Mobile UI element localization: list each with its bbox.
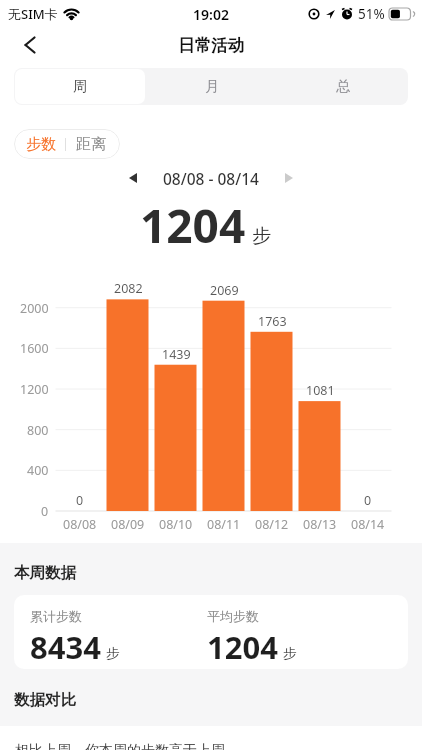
staticText: 本周数据 [14, 563, 76, 583]
staticText: 步 [283, 645, 297, 662]
staticText: 08/11 [207, 516, 241, 533]
staticText: 08/13 [303, 516, 337, 533]
staticText: 0 [364, 492, 372, 509]
button[interactable] [14, 29, 46, 61]
staticText: 08/09 [111, 516, 145, 533]
button[interactable]: 总 [277, 68, 408, 105]
staticText: 19:02 [193, 5, 229, 24]
button[interactable]: 月 [146, 68, 277, 105]
staticText: 0 [76, 492, 84, 509]
button[interactable]: 累计步数 [14, 595, 408, 669]
staticText: 步 [252, 224, 271, 248]
staticText: 08/08 [63, 516, 97, 533]
staticText: 08/10 [159, 516, 193, 533]
staticText: 距离 [76, 135, 106, 154]
staticText: 400 [27, 462, 49, 479]
staticText: 数据对比 [14, 690, 76, 710]
staticText: 2082 [114, 280, 143, 297]
staticText: 平均步数 [207, 608, 259, 624]
staticText: 步 [106, 645, 120, 662]
button[interactable]: 步数 [14, 129, 120, 159]
staticText: 1763 [258, 313, 287, 330]
staticText: 1204 [207, 626, 278, 668]
staticText: 1439 [162, 346, 191, 363]
staticText: 1204 [140, 194, 246, 257]
staticText: 08/08 - 08/14 [163, 168, 259, 189]
staticText: 累计步数 [30, 608, 82, 624]
staticText: 相比上周，你本周的步数高于上周 [15, 742, 225, 750]
staticText: 800 [27, 422, 49, 439]
staticText: 2069 [210, 282, 239, 299]
staticText: 1600 [20, 340, 49, 357]
staticText: 0 [41, 503, 49, 520]
button[interactable] [277, 166, 301, 190]
staticText: 日常活动 [178, 35, 244, 56]
staticText: 总 [336, 78, 350, 96]
staticText: 无SIM卡 [8, 5, 58, 23]
staticText: 1081 [306, 382, 335, 399]
staticText: 月 [205, 78, 219, 96]
staticText: 步数 [26, 135, 56, 154]
button[interactable] [121, 166, 145, 190]
staticText: 8434 [30, 626, 101, 668]
button[interactable]: 周 [15, 69, 145, 104]
staticText: 51% [358, 5, 385, 23]
staticText: 08/14 [351, 516, 385, 533]
staticText: 周 [73, 78, 87, 96]
staticText: 2000 [20, 300, 49, 317]
staticText: 1200 [20, 381, 49, 398]
staticText: 08/12 [255, 516, 289, 533]
